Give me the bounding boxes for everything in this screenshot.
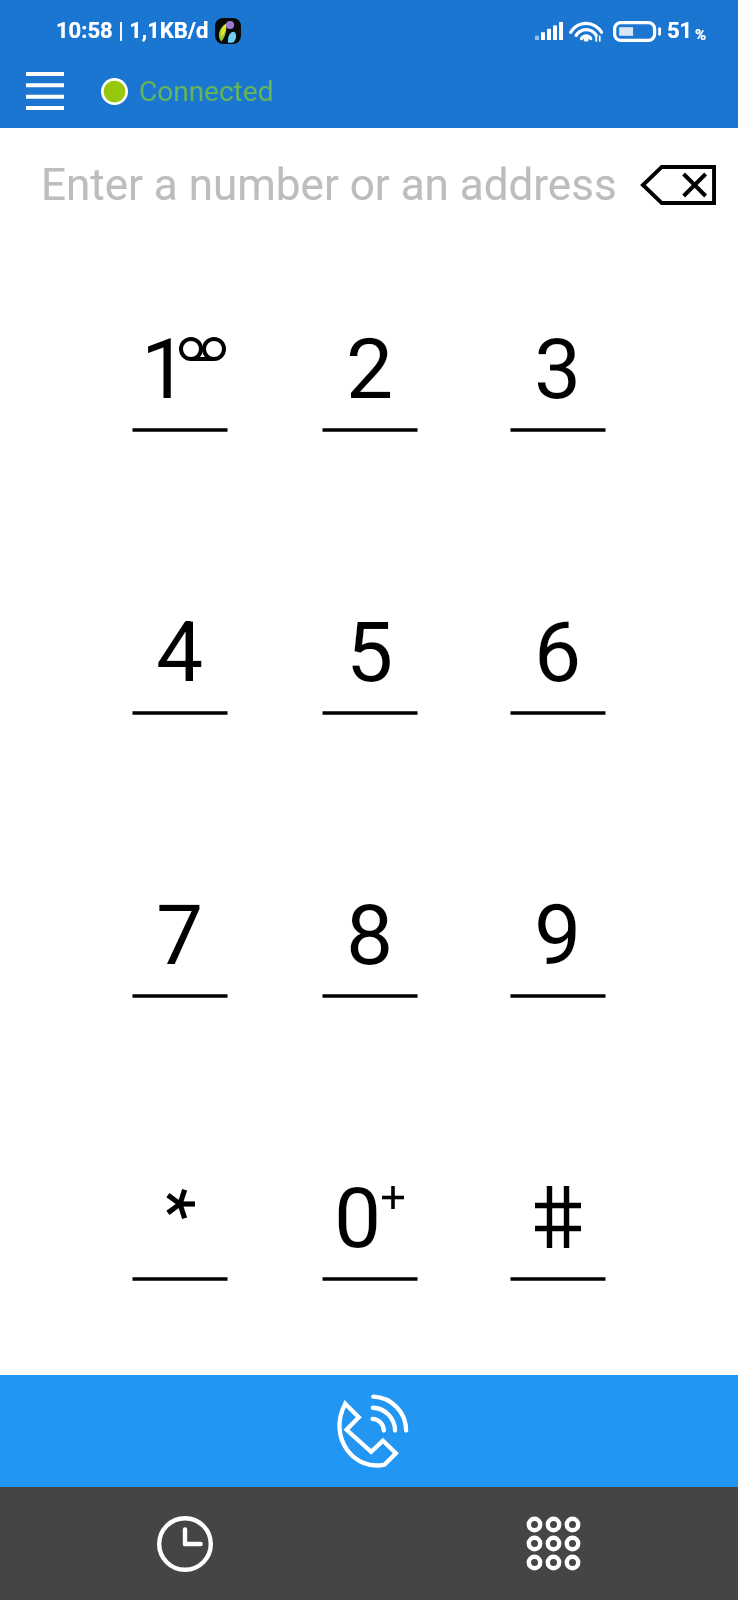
staticText: 2 [346,320,394,418]
staticText: 51 [667,18,693,44]
button[interactable]: 3 [464,189,652,472]
button[interactable]: 4 [86,472,274,755]
staticText: 4 [156,603,204,701]
button[interactable]: Star [86,1038,274,1321]
staticText: 6 [534,603,582,701]
button[interactable]: 6 [464,472,652,755]
staticText: 1 [141,320,189,418]
staticText: % [695,26,707,44]
button[interactable]: Backspace [626,133,730,237]
staticText: 7 [156,886,204,984]
staticText: Enter a number or an address [41,159,617,211]
staticText: Connected [139,75,274,108]
staticText: 8 [346,886,394,984]
staticText: 10:58 | 1,1KB/d [56,18,209,44]
button[interactable]: 1 voicemail [86,189,274,472]
button[interactable]: Menu [6,59,84,123]
button[interactable]: 7 [86,755,274,1038]
staticText: 5 [346,603,394,701]
button[interactable]: 2 [276,189,464,472]
button[interactable]: 0 plus [276,1038,464,1321]
button[interactable]: Recent calls [0,1487,369,1600]
staticText: 0 [334,1169,382,1267]
button[interactable]: 8 [276,755,464,1038]
button[interactable]: Dialpad [369,1487,738,1600]
button[interactable]: 5 [276,472,464,755]
button[interactable]: 9 [464,755,652,1038]
button[interactable]: Call [0,1375,738,1487]
staticText: 3 [534,320,582,418]
button[interactable]: Pound [464,1038,652,1321]
staticText: 9 [534,886,582,984]
